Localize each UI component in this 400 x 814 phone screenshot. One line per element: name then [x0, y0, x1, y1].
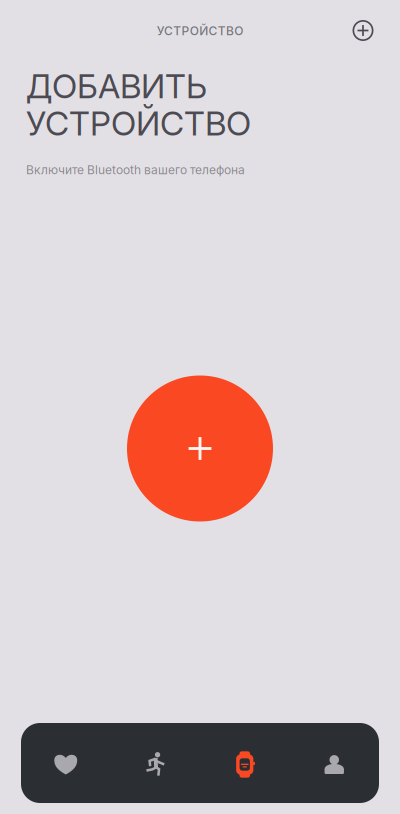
button[interactable]: Activity [110, 723, 200, 803]
button[interactable]: Add device [127, 375, 273, 521]
button[interactable]: Device [200, 723, 289, 803]
staticText: УСТРОЙСТВО [157, 24, 243, 38]
button[interactable]: Add device [341, 8, 385, 52]
staticText: Включите Bluetooth вашего телефона [26, 163, 245, 177]
staticText: УСТРОЙСТВО [26, 103, 251, 144]
button[interactable]: Favorites [21, 723, 110, 803]
staticText: ДОБАВИТЬ [26, 66, 207, 106]
button[interactable]: Profile [289, 723, 379, 803]
